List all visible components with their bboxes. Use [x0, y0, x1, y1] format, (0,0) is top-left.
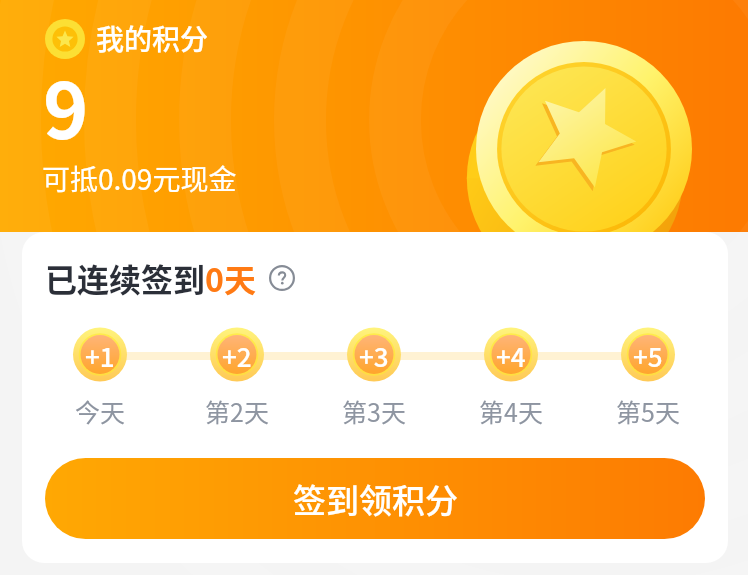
staticText: 第3天 [342, 393, 406, 425]
staticText: 第5天 [616, 393, 680, 425]
staticText: 第4天 [479, 393, 543, 425]
staticText: 第2天 [205, 393, 269, 425]
staticText: +4 [496, 337, 526, 375]
staticText: 已连续签到0天 [45, 255, 256, 301]
staticText: 今天 [75, 393, 126, 425]
staticText: 可抵0.09元现金 [42, 158, 237, 199]
staticText: +2 [222, 337, 252, 375]
staticText: +1 [85, 337, 115, 375]
button[interactable]: +5 [608, 326, 688, 386]
button[interactable]: Help [269, 265, 295, 291]
button[interactable]: +4 [471, 326, 551, 386]
button[interactable]: 签到领积分 [45, 458, 705, 539]
staticText: 签到领积分 [293, 475, 458, 523]
button[interactable]: +1 [60, 326, 140, 386]
staticText: +3 [359, 337, 389, 375]
button[interactable]: +3 [334, 326, 414, 386]
staticText: 我的积分 [96, 18, 209, 59]
staticText: +5 [633, 337, 663, 375]
button[interactable]: +2 [197, 326, 277, 386]
staticText: 9 [43, 50, 89, 161]
